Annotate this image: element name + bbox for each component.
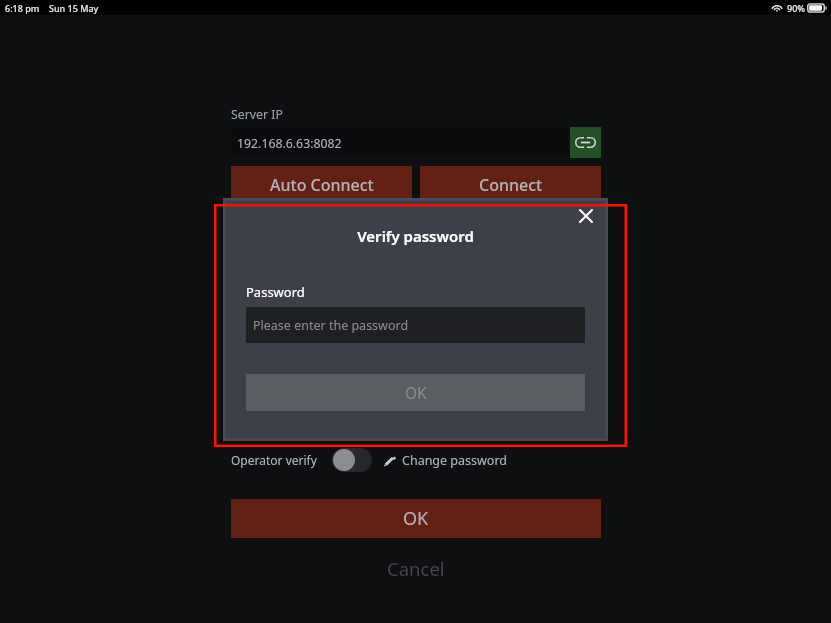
button[interactable]: Auto Connect (231, 166, 412, 204)
button[interactable]: Cancel (231, 538, 601, 598)
staticText: 90% (787, 2, 805, 14)
button[interactable]: 192.168.6.63:8082 (231, 129, 567, 157)
staticText: Please enter the password (253, 317, 409, 334)
button[interactable]: Close (573, 203, 599, 229)
staticText: Verify password (223, 226, 608, 246)
staticText: Operator verify (231, 452, 317, 468)
staticText: Server IP (231, 106, 283, 123)
button[interactable]: OK (246, 374, 585, 411)
staticText: Password (246, 283, 305, 301)
staticText: Auto Connect (270, 174, 374, 196)
staticText: 192.168.6.63:8082 (237, 135, 342, 152)
button[interactable]: Change password (383, 452, 508, 469)
staticText: Cancel (387, 556, 445, 581)
staticText: 6:18 pm (5, 2, 40, 14)
staticText: Change password (402, 452, 508, 469)
button[interactable]: Connect (420, 166, 601, 204)
staticText: Connect (479, 174, 543, 196)
staticText: OK (403, 506, 429, 531)
staticText: Sun 15 May (49, 2, 99, 14)
button[interactable]: Please enter the password (246, 307, 585, 343)
button[interactable] (332, 448, 372, 472)
staticText: OK (405, 382, 427, 403)
button[interactable]: Link (570, 127, 601, 158)
button[interactable]: OK (231, 499, 601, 538)
